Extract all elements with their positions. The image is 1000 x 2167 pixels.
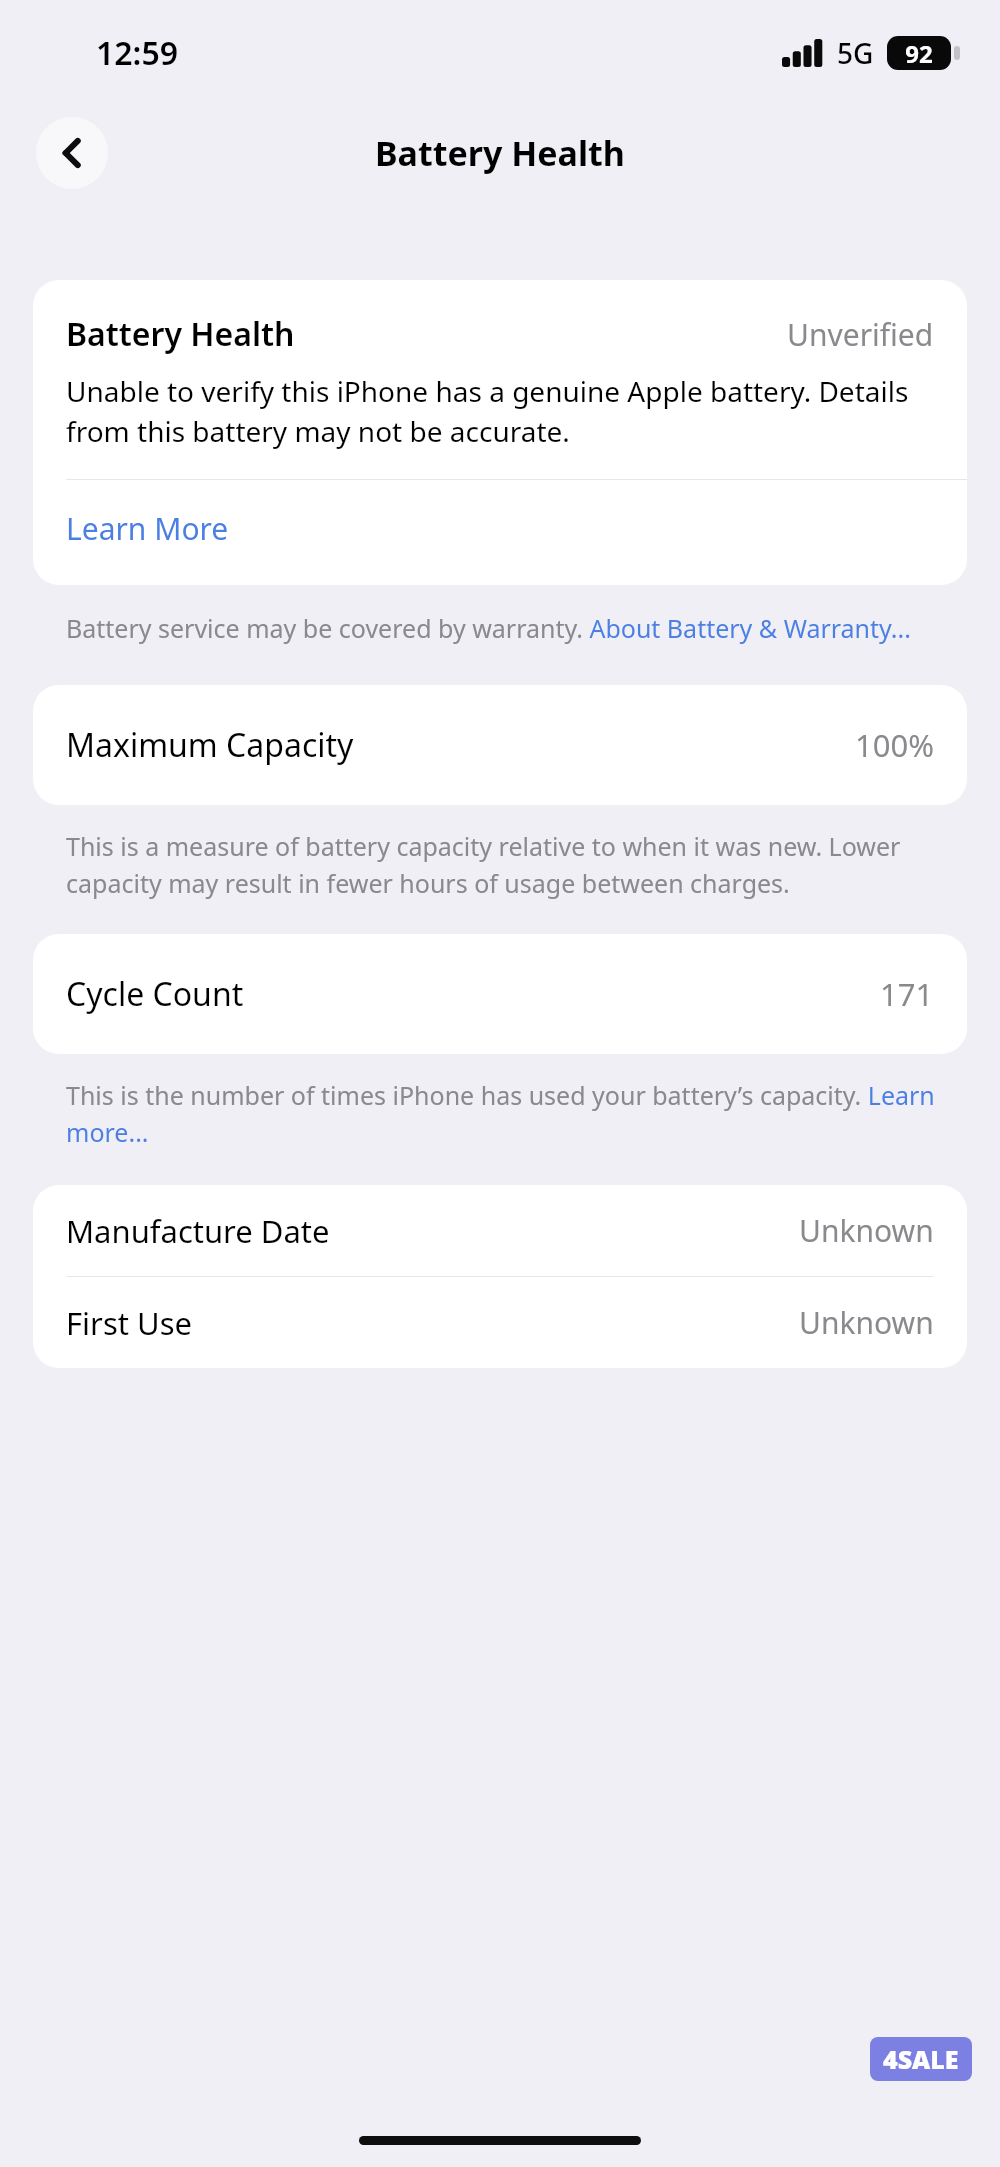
staticText: Unable to verify this iPhone has a genui… [66,372,934,451]
staticText: Unverified [787,314,934,355]
staticText: 100% [855,724,934,766]
staticText: Unknown [799,1210,934,1251]
staticText: Manufacture Date [66,1210,799,1252]
staticText: Cycle Count [66,972,880,1016]
button[interactable]: Manufacture Date [33,1185,967,1276]
button[interactable]: This is the number of times iPhone has u… [66,1078,955,1149]
staticText: Unknown [799,1302,934,1343]
staticText: Battery service may be covered by warran… [66,611,911,645]
button[interactable]: Maximum Capacity [33,685,967,805]
staticText: Battery Health [66,312,787,356]
staticText: Maximum Capacity [66,723,855,767]
button[interactable]: Battery service may be covered by warran… [66,611,911,645]
staticText: 5G [837,34,874,72]
button[interactable]: First Use [33,1277,967,1368]
staticText: 4SALE [883,2042,959,2076]
staticText: 12:59 [96,31,179,75]
staticText: 171 [880,973,934,1015]
staticText: Battery Health [375,130,625,176]
button[interactable]: Learn More [33,480,967,585]
staticText: First Use [66,1302,799,1344]
button[interactable]: Cycle Count [33,934,967,1054]
staticText: 92 [905,37,933,70]
staticText: Learn More [66,508,229,549]
staticText: This is a measure of battery capacity re… [66,829,955,900]
staticText: This is the number of times iPhone has u… [66,1078,955,1149]
button[interactable]: Back [36,117,108,189]
